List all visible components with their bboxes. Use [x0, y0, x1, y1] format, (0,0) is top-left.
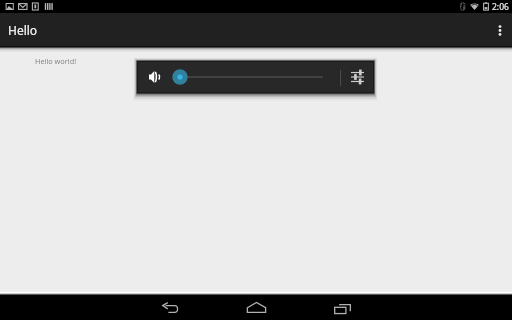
button[interactable]: Volume settings [346, 61, 369, 93]
button[interactable]: Home [230, 295, 282, 320]
button[interactable]: Back [144, 295, 195, 320]
staticText: Hello world! [35, 56, 77, 66]
button[interactable]: More options [487, 13, 512, 46]
staticText: Hello [8, 22, 38, 38]
button[interactable]: Recent apps [317, 295, 368, 320]
button[interactable]: Mute volume [144, 61, 165, 93]
staticText: 2:06 [492, 1, 509, 13]
